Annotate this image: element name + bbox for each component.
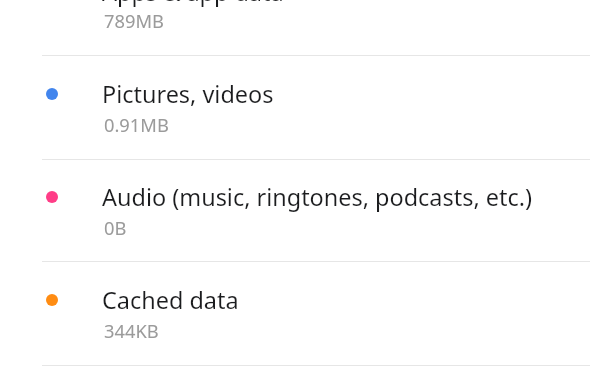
button[interactable]: Pictures, videos (0, 56, 590, 159)
staticText: 344KB (104, 318, 159, 343)
button[interactable]: Apps & app data (0, 0, 590, 55)
staticText: 789MB (104, 8, 164, 33)
staticText: 0B (104, 215, 127, 240)
staticText: Audio (music, ringtones, podcasts, etc.) (102, 181, 533, 213)
staticText: Cached data (102, 284, 239, 316)
button[interactable]: Cached data (0, 262, 590, 365)
staticText: Apps & app data (102, 0, 284, 8)
button[interactable]: Audio (music, ringtones, podcasts, etc.) (0, 160, 590, 261)
staticText: Pictures, videos (102, 78, 274, 110)
staticText: 0.91MB (104, 112, 169, 137)
